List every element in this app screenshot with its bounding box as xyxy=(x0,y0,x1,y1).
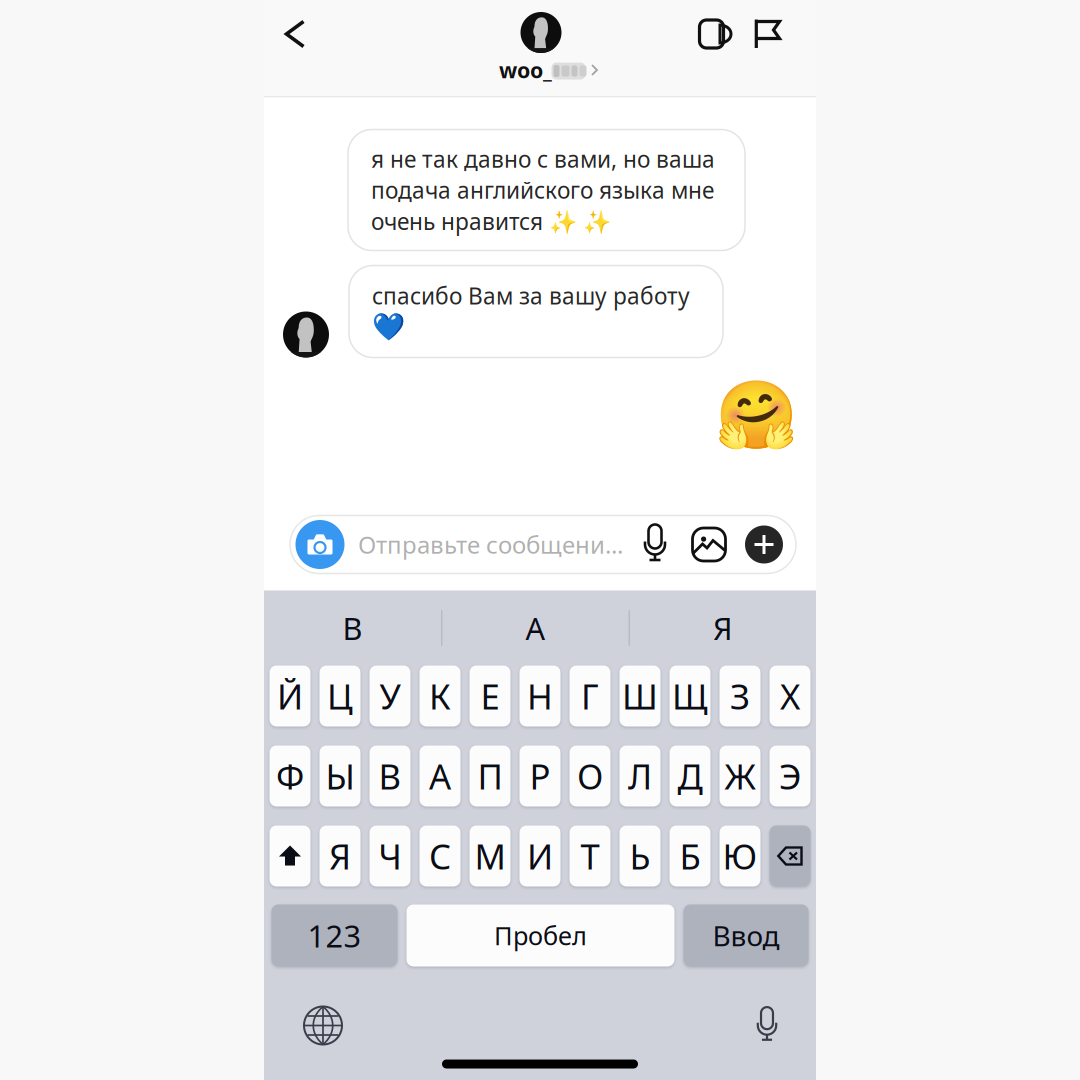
staticText: я не так давно с вами, но ваша xyxy=(371,144,715,174)
button[interactable]: Пробел xyxy=(406,904,674,966)
staticText: Ч xyxy=(378,833,401,879)
button[interactable]: З xyxy=(719,665,760,726)
button[interactable]: Р xyxy=(519,745,560,806)
staticText: 123 xyxy=(307,915,361,956)
button[interactable]: Я xyxy=(319,825,360,886)
button[interactable]: У xyxy=(369,665,410,726)
staticText: А xyxy=(525,608,545,648)
button[interactable]: Dictate xyxy=(745,1003,789,1047)
button[interactable]: Ш xyxy=(619,665,660,726)
staticText: Х xyxy=(780,673,800,719)
staticText: А xyxy=(429,753,451,799)
staticText: Л xyxy=(628,753,652,799)
button[interactable]: Change keyboard xyxy=(297,1003,349,1047)
button[interactable]: Н xyxy=(519,665,560,726)
button[interactable]: Ф xyxy=(269,745,310,806)
button[interactable]: Д xyxy=(669,745,710,806)
staticText: Ж xyxy=(724,753,755,799)
staticText: П xyxy=(477,753,502,799)
button[interactable]: Т xyxy=(569,825,610,886)
button[interactable]: Photos xyxy=(691,521,727,567)
staticText: У xyxy=(379,673,400,719)
button[interactable]: Report xyxy=(742,2,794,66)
staticText: Э xyxy=(779,753,801,799)
button[interactable]: Э xyxy=(769,745,810,806)
button[interactable]: Ы xyxy=(319,745,360,806)
staticText: Б xyxy=(679,833,700,879)
staticText: Е xyxy=(480,673,499,719)
staticText: Я xyxy=(713,608,733,648)
staticText: Отправьте сообщени... xyxy=(358,529,623,560)
staticText: Пробел xyxy=(494,919,587,952)
button[interactable]: Б xyxy=(669,825,710,886)
staticText: В xyxy=(342,608,362,648)
button[interactable]: Л xyxy=(619,745,660,806)
button[interactable]: К xyxy=(419,665,460,726)
button[interactable]: Й xyxy=(269,665,310,726)
staticText: подача английского языка мне xyxy=(371,175,714,205)
button[interactable]: Г xyxy=(569,665,610,726)
button[interactable]: С xyxy=(419,825,460,886)
button[interactable]: Х xyxy=(769,665,810,726)
button[interactable]: Ц xyxy=(319,665,360,726)
button[interactable]: М xyxy=(469,825,510,886)
staticText: Ц xyxy=(327,673,353,719)
button[interactable]: Voice message xyxy=(638,521,672,567)
staticText: 🤗 xyxy=(715,377,798,454)
button[interactable]: А xyxy=(419,745,460,806)
staticText: Ь xyxy=(629,833,650,879)
staticText: В xyxy=(378,753,401,799)
staticText: Й xyxy=(277,673,303,719)
staticText: Д xyxy=(677,753,702,799)
button[interactable]: Ь xyxy=(619,825,660,886)
staticText: Г xyxy=(581,673,599,719)
button[interactable]: More xyxy=(744,521,784,567)
button[interactable]: woo_ xyxy=(451,12,651,92)
staticText: И xyxy=(527,833,553,879)
button[interactable]: Ч xyxy=(369,825,410,886)
staticText: 💙 xyxy=(372,312,405,342)
button[interactable]: Ж xyxy=(719,745,760,806)
staticText: Н xyxy=(527,673,553,719)
staticText: С xyxy=(429,833,451,879)
button[interactable]: Camera xyxy=(292,516,348,572)
staticText: Ввод xyxy=(712,917,779,954)
staticText: Т xyxy=(580,833,599,879)
staticText: очень нравится ✨ ✨ xyxy=(371,206,611,236)
staticText: Ю xyxy=(722,833,757,879)
staticText: woo_ xyxy=(499,56,552,84)
staticText: Р xyxy=(529,753,550,799)
button[interactable]: П xyxy=(469,745,510,806)
staticText: Я xyxy=(329,833,351,879)
staticText: О xyxy=(577,753,603,799)
button[interactable]: 123 xyxy=(271,904,397,966)
button[interactable]: Shift xyxy=(269,825,310,886)
button[interactable]: Щ xyxy=(669,665,710,726)
button[interactable]: Ввод xyxy=(683,904,808,966)
button[interactable]: И xyxy=(519,825,560,886)
button[interactable]: Ю xyxy=(719,825,760,886)
staticText: спасибо Вам за вашу работу xyxy=(372,281,690,311)
staticText: Ш xyxy=(622,673,658,719)
staticText: М xyxy=(474,833,505,879)
button[interactable]: О xyxy=(569,745,610,806)
staticText: З xyxy=(730,673,750,719)
staticText: Ф xyxy=(276,753,304,799)
button[interactable]: В xyxy=(369,745,410,806)
button[interactable]: Е xyxy=(469,665,510,726)
button[interactable]: Back xyxy=(266,2,324,66)
staticText: К xyxy=(429,673,451,719)
staticText: Ы xyxy=(325,753,354,799)
button[interactable]: Delete xyxy=(769,825,810,886)
staticText: Щ xyxy=(672,673,708,719)
button[interactable]: Video call xyxy=(688,2,744,66)
